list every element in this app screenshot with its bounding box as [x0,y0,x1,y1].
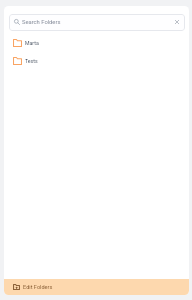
button[interactable]: Marta [4,34,189,52]
staticText: Edit Folders [23,284,53,291]
staticText: Marta [25,40,39,46]
button[interactable]: Search Folders [9,14,185,31]
button[interactable]: Edit Folders [4,279,189,295]
button[interactable]: Tests [4,52,189,70]
button[interactable]: Clear search [172,18,181,27]
staticText: Tests [25,58,38,64]
staticText: Search Folders [22,19,61,26]
